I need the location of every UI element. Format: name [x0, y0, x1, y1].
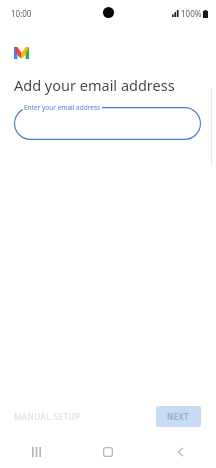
staticText: MANUAL SETUP [14, 411, 81, 422]
staticText: 100% [181, 8, 202, 19]
staticText: 10:00 [11, 8, 32, 19]
button[interactable] [14, 107, 201, 140]
button[interactable]: NEXT [156, 406, 201, 427]
button[interactable]: Recent apps [23, 439, 49, 465]
staticText: Add your email address [14, 75, 175, 95]
button[interactable]: Home [95, 439, 121, 465]
staticText: NEXT [167, 411, 190, 422]
staticText: Enter your email address [24, 103, 101, 112]
button[interactable]: MANUAL SETUP [8, 406, 87, 427]
button[interactable]: Back [167, 439, 193, 465]
